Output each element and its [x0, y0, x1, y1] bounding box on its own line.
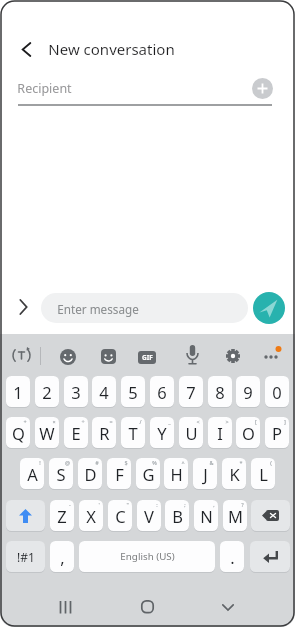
- staticText: C: [115, 505, 126, 527]
- button[interactable]: 4: [92, 376, 116, 407]
- staticText: .: [230, 546, 235, 568]
- button[interactable]: H: [164, 458, 188, 489]
- staticText: Recipient: [17, 80, 72, 97]
- button[interactable]: 6: [150, 376, 174, 407]
- button[interactable]: [251, 500, 290, 531]
- staticText: <: [196, 418, 200, 425]
- button[interactable]: N: [194, 500, 218, 531]
- staticText: D: [84, 463, 97, 485]
- button[interactable]: GIF: [138, 351, 156, 364]
- staticText: +: [23, 418, 27, 425]
- staticText: T: [128, 422, 138, 444]
- button[interactable]: [6, 500, 45, 531]
- button[interactable]: [222, 604, 234, 611]
- staticText: ?: [241, 501, 244, 508]
- staticText: #: [95, 459, 99, 466]
- staticText: Enter message: [57, 301, 139, 317]
- staticText: S: [56, 463, 66, 485]
- button[interactable]: D: [78, 458, 102, 489]
- button[interactable]: [141, 600, 154, 614]
- button[interactable]: Z: [50, 500, 74, 531]
- staticText: 8: [215, 381, 225, 403]
- button[interactable]: V: [137, 500, 161, 531]
- button[interactable]: .: [220, 541, 244, 572]
- staticText: A: [27, 463, 38, 485]
- button[interactable]: [101, 349, 116, 364]
- staticText: *: [239, 459, 243, 466]
- button[interactable]: L: [251, 458, 275, 489]
- button[interactable]: [252, 78, 273, 99]
- staticText: !#1: [17, 549, 35, 565]
- button[interactable]: T: [121, 417, 145, 448]
- button[interactable]: 3: [64, 376, 88, 407]
- button[interactable]: 7: [179, 376, 203, 407]
- button[interactable]: U: [179, 417, 203, 448]
- staticText: Q: [12, 422, 25, 444]
- staticText: ^: [181, 459, 185, 466]
- staticText: V: [144, 505, 154, 527]
- staticText: 3: [71, 381, 81, 403]
- button[interactable]: O: [236, 417, 260, 448]
- staticText: N: [200, 505, 213, 527]
- staticText: 1: [13, 381, 23, 403]
- staticText: English (US): [120, 550, 175, 563]
- button[interactable]: E: [64, 417, 88, 448]
- button[interactable]: M: [223, 500, 247, 531]
- button[interactable]: English (US): [79, 541, 215, 572]
- button[interactable]: 5: [121, 376, 145, 407]
- staticText: J: [203, 463, 208, 485]
- button[interactable]: Y: [150, 417, 174, 448]
- button[interactable]: 9: [236, 376, 260, 407]
- button[interactable]: [59, 601, 73, 614]
- button[interactable]: [60, 349, 76, 365]
- button[interactable]: F: [107, 458, 131, 489]
- button[interactable]: Enter message: [41, 293, 248, 323]
- button[interactable]: W: [35, 417, 59, 448]
- button[interactable]: [19, 300, 28, 314]
- button[interactable]: 1: [6, 376, 30, 407]
- button[interactable]: X: [79, 500, 103, 531]
- button[interactable]: Q: [6, 417, 30, 448]
- staticText: ;: [184, 501, 186, 508]
- staticText: M: [228, 505, 243, 527]
- button[interactable]: [263, 344, 283, 362]
- button[interactable]: I: [208, 417, 232, 448]
- staticText: @: [65, 459, 70, 466]
- staticText: O: [242, 422, 255, 444]
- staticText: G: [142, 463, 155, 485]
- staticText: &: [209, 459, 214, 466]
- button[interactable]: K: [222, 458, 246, 489]
- staticText: X: [86, 505, 96, 527]
- button[interactable]: P: [265, 417, 289, 448]
- button[interactable]: [13, 347, 30, 364]
- button[interactable]: [21, 43, 32, 56]
- button[interactable]: 8: [208, 376, 232, 407]
- button[interactable]: [250, 541, 290, 572]
- button[interactable]: [226, 349, 240, 363]
- staticText: 0: [272, 381, 282, 403]
- button[interactable]: J: [193, 458, 217, 489]
- button[interactable]: A: [20, 458, 44, 489]
- staticText: 4: [99, 381, 109, 403]
- staticText: =: [109, 418, 113, 425]
- button[interactable]: 2: [35, 376, 59, 407]
- staticText: H: [170, 463, 183, 485]
- button[interactable]: [253, 292, 285, 324]
- staticText: R: [99, 422, 110, 444]
- staticText: P: [272, 422, 282, 444]
- staticText: !: [39, 459, 41, 466]
- button[interactable]: !#1: [6, 541, 45, 572]
- button[interactable]: G: [136, 458, 160, 489]
- staticText: ,: [60, 546, 65, 568]
- staticText: E: [71, 422, 81, 444]
- button[interactable]: 0: [265, 376, 289, 407]
- button[interactable]: ,: [50, 541, 74, 572]
- button[interactable]: S: [49, 458, 73, 489]
- button[interactable]: [186, 345, 199, 366]
- button[interactable]: R: [92, 417, 116, 448]
- staticText: L: [259, 463, 268, 485]
- button[interactable]: C: [108, 500, 132, 531]
- staticText: 5: [128, 381, 138, 403]
- staticText: ': [98, 501, 100, 508]
- button[interactable]: B: [165, 500, 189, 531]
